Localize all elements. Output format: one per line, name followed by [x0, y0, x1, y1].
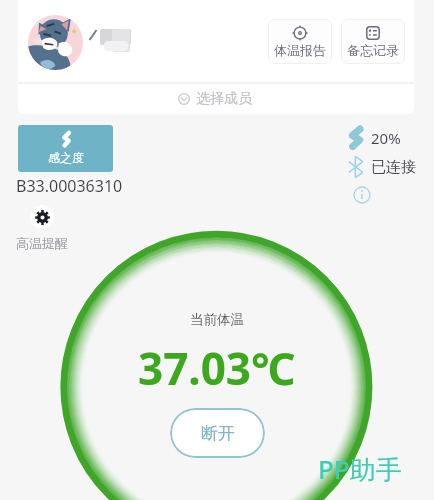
button[interactable]: 断开: [170, 408, 265, 458]
staticText: 选择成员: [196, 90, 252, 108]
staticText: 断开: [201, 423, 235, 444]
button[interactable]: 体温报告: [268, 19, 332, 64]
staticText: 备忘记录: [347, 42, 399, 58]
button[interactable]: 选择成员: [18, 84, 414, 114]
button[interactable]: 感之度: [18, 125, 113, 172]
staticText: PP助手: [318, 451, 402, 487]
staticText: 37.03℃: [138, 338, 296, 398]
button[interactable]: Battery 20 percent: [347, 125, 401, 150]
staticText: 感之度: [48, 150, 84, 165]
button[interactable]: 备忘记录: [341, 19, 405, 64]
staticText: 高温提醒: [16, 235, 68, 251]
staticText: 已连接: [371, 158, 416, 177]
button[interactable]: Avatar: [28, 15, 83, 70]
staticText: B33.00036310: [16, 175, 123, 197]
staticText: 当前体温: [190, 311, 244, 328]
button[interactable]: Info: [353, 186, 371, 204]
staticText: 体温报告: [274, 42, 326, 58]
staticText: 20%: [371, 128, 401, 148]
button[interactable]: 已连接: [347, 155, 416, 179]
button[interactable]: 高温提醒: [16, 205, 68, 251]
